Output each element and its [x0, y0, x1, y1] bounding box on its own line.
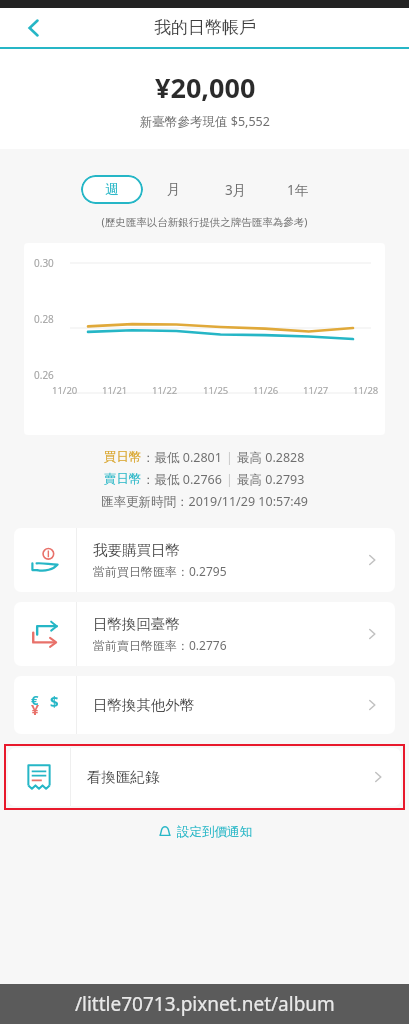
- staticText: |: [226, 471, 237, 488]
- staticText: 3月: [225, 181, 247, 199]
- staticText: 月: [167, 181, 181, 198]
- button[interactable]: 我要購買日幣: [14, 528, 395, 592]
- staticText: 我的日幣帳戶: [154, 17, 256, 38]
- staticText: 11/27: [303, 384, 329, 397]
- staticText: $: [50, 691, 59, 711]
- staticText: /little70713.pixnet.net/album: [75, 991, 335, 1017]
- staticText: 11/26: [253, 384, 279, 397]
- staticText: 當前賣日幣匯率：0.2776: [93, 637, 227, 653]
- staticText: 0.30: [34, 256, 54, 270]
- button[interactable]: 日幣換回臺幣: [14, 602, 395, 666]
- button[interactable]: 週: [81, 175, 143, 204]
- staticText: ：最低 0.2801: [142, 449, 226, 466]
- button[interactable]: 1年: [267, 175, 329, 204]
- button[interactable]: Back: [12, 8, 56, 47]
- staticText: (歷史匯率以台新銀行提供之牌告匯率為參考): [0, 215, 409, 229]
- staticText: 11/20: [52, 384, 78, 397]
- button[interactable]: 看換匯紀錄: [8, 748, 401, 806]
- staticText: 當前買日幣匯率：0.2795: [93, 563, 227, 579]
- staticText: 新臺幣參考現值 $5,552: [140, 113, 270, 130]
- staticText: 週: [105, 181, 119, 198]
- staticText: 看換匯紀錄: [87, 768, 160, 786]
- staticText: ¥20,000: [155, 69, 256, 106]
- button[interactable]: 月: [143, 175, 205, 204]
- staticText: 11/28: [353, 384, 379, 397]
- staticText: 1年: [287, 181, 309, 199]
- staticText: 0.28: [34, 312, 54, 326]
- staticText: €: [31, 691, 39, 709]
- staticText: 0.26: [34, 368, 54, 382]
- staticText: 日幣換其他外幣: [93, 696, 195, 714]
- staticText: 11/21: [102, 384, 128, 397]
- staticText: 賣日幣: [104, 471, 142, 487]
- staticText: ：最低 0.2766: [142, 471, 226, 488]
- staticText: 11/25: [203, 384, 229, 397]
- staticText: 最高 0.2793: [237, 471, 305, 488]
- staticText: 我要購買日幣: [93, 541, 180, 559]
- staticText: 匯率更新時間：2019/11/29 10:57:49: [0, 493, 409, 510]
- staticText: |: [226, 449, 237, 466]
- button[interactable]: €: [14, 676, 395, 734]
- button[interactable]: 3月: [205, 175, 267, 204]
- button[interactable]: 設定到價通知: [0, 824, 409, 840]
- staticText: 買日幣: [104, 449, 142, 465]
- staticText: ¥: [31, 700, 40, 719]
- staticText: 最高 0.2828: [237, 449, 305, 466]
- staticText: 日幣換回臺幣: [93, 615, 180, 633]
- staticText: 11/22: [152, 384, 178, 397]
- staticText: 設定到價通知: [177, 824, 252, 840]
